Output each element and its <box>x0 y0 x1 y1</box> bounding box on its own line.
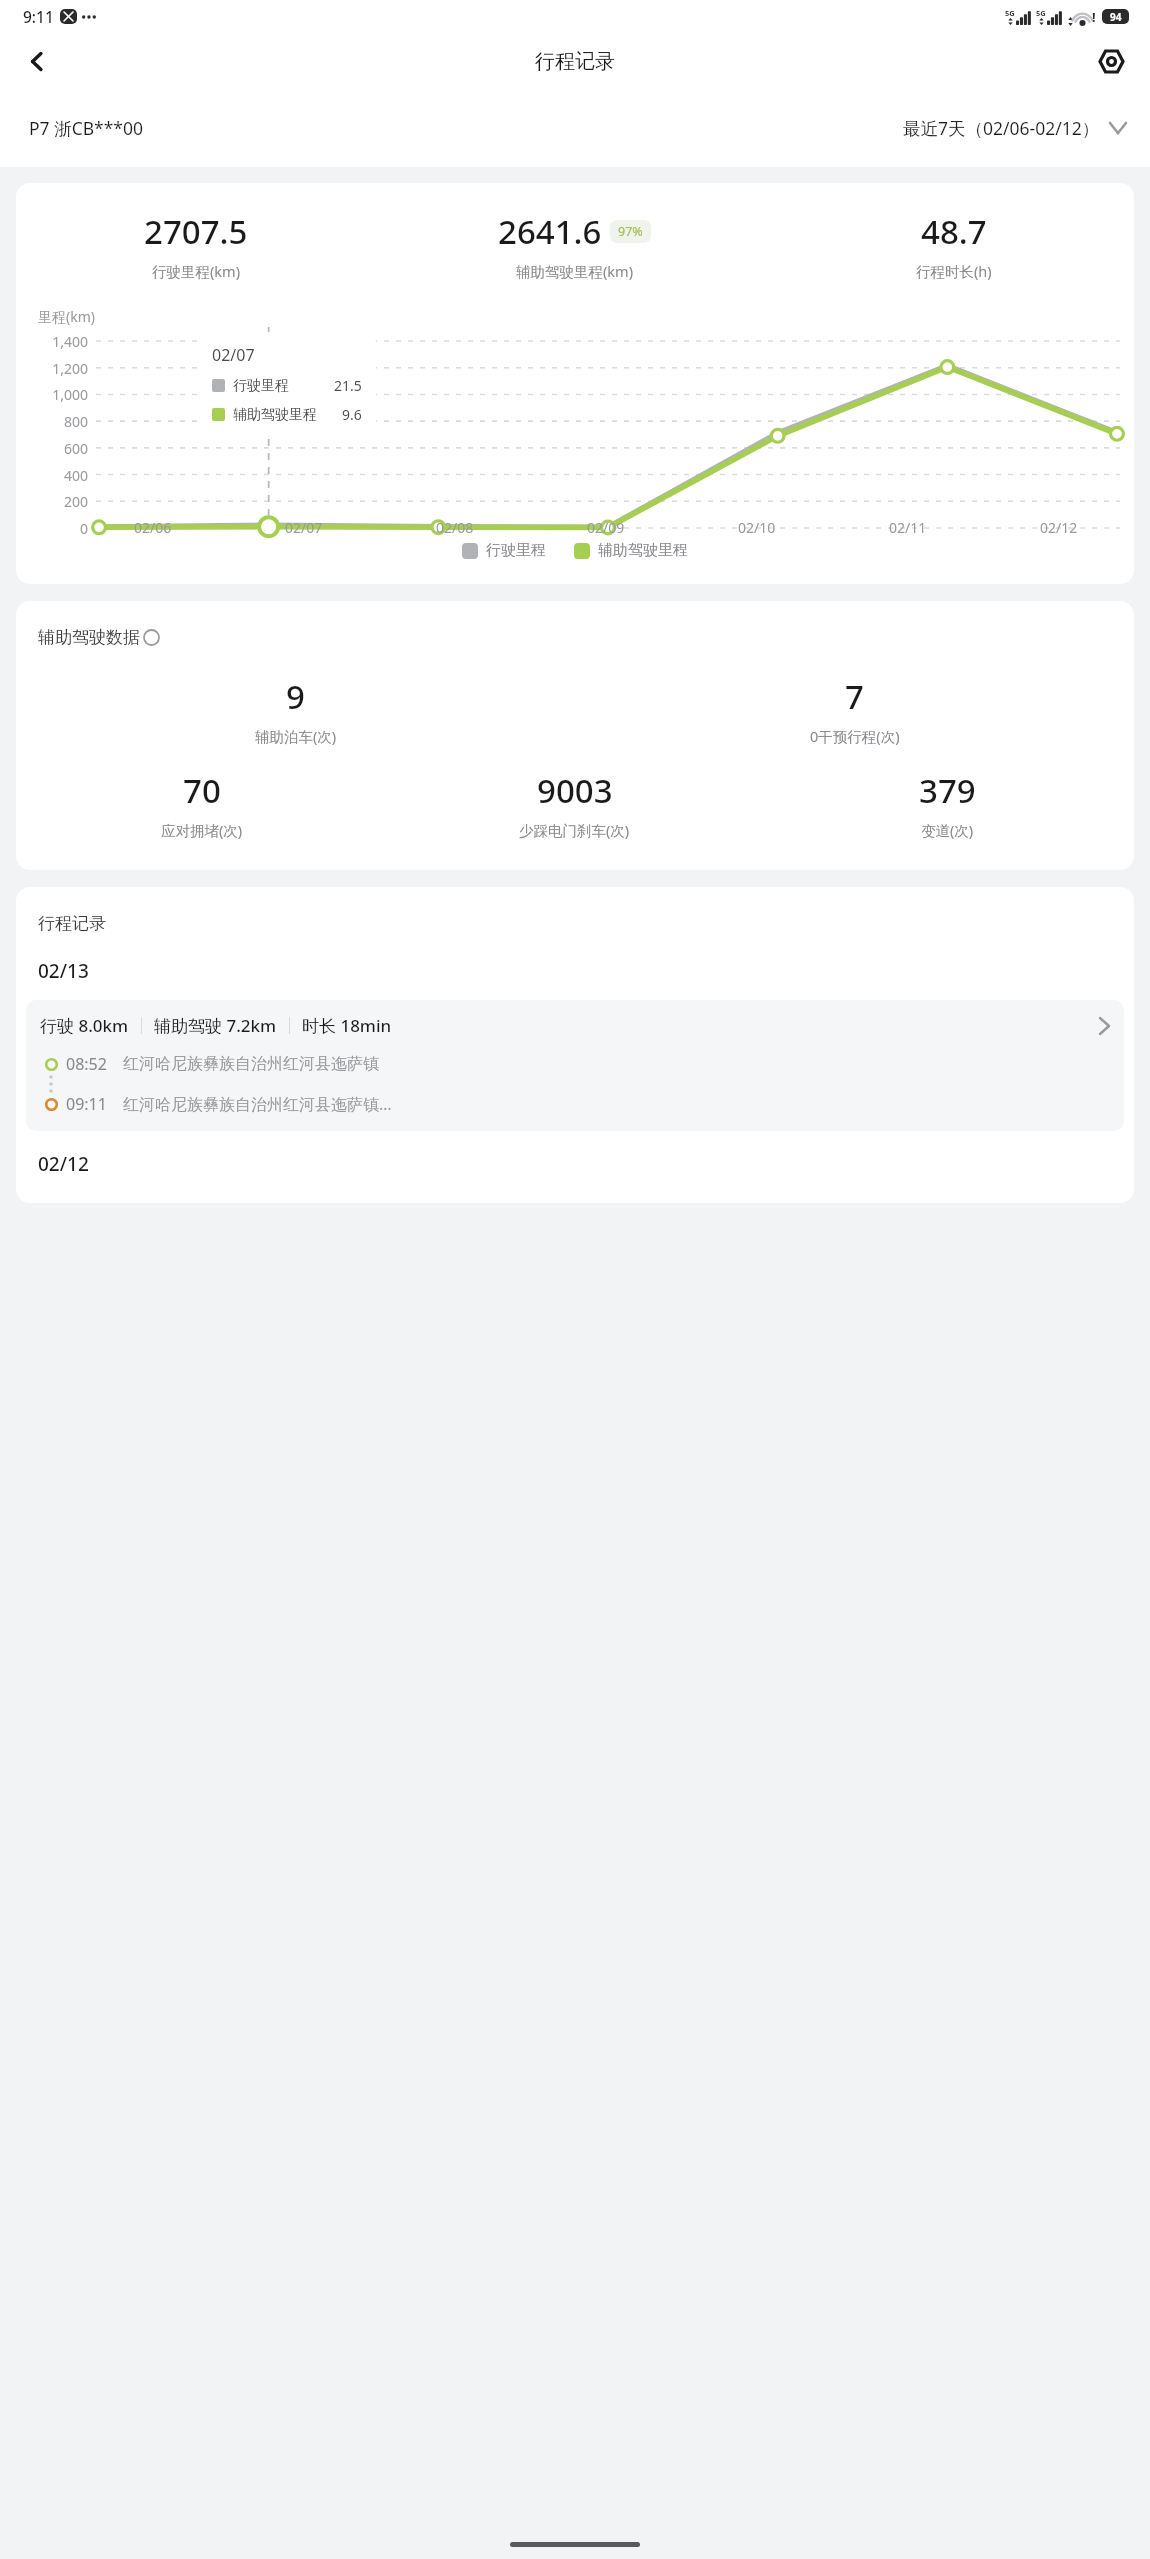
staticText: 行程记录 <box>38 913 106 934</box>
staticText: 2707.5 <box>144 209 248 254</box>
staticText: 02/12 <box>1040 518 1078 537</box>
button[interactable]: P7 浙CB***00 <box>29 116 144 140</box>
staticText: 红河哈尼族彝族自治州红河县迤萨镇… <box>123 1093 392 1115</box>
staticText: 02/12 <box>38 1151 89 1177</box>
staticText: 02/07 <box>285 518 323 537</box>
staticText: 0干预行程(次) <box>810 726 900 746</box>
staticText: 辅助泊车(次) <box>255 726 337 746</box>
staticText: 08:52 <box>66 1053 107 1075</box>
staticText: 9.6 <box>342 405 362 424</box>
staticText: 7 <box>845 674 864 719</box>
staticText: 02/08 <box>436 518 474 537</box>
staticText: 02/11 <box>889 518 927 537</box>
button[interactable]: Settings <box>1088 38 1134 84</box>
staticText: 1,400 <box>52 332 88 350</box>
staticText: 5G <box>1036 8 1046 18</box>
staticText: 02/10 <box>738 518 776 537</box>
staticText: 02/09 <box>587 518 625 537</box>
staticText: 9:11 <box>23 6 54 27</box>
staticText: 9 <box>286 674 305 719</box>
staticText: 行驶里程(km) <box>152 261 241 281</box>
staticText: 辅助驾驶里程(km) <box>516 261 634 281</box>
button[interactable]: Back <box>14 38 60 84</box>
staticText: 200 <box>63 492 88 510</box>
staticText: 行驶 8.0km <box>40 1014 129 1037</box>
staticText: 辅助驾驶 7.2km <box>154 1014 277 1037</box>
staticText: 行驶里程 <box>486 541 546 560</box>
staticText: 48.7 <box>921 209 987 254</box>
staticText: 变道(次) <box>921 820 974 840</box>
staticText: 09:11 <box>66 1093 107 1115</box>
staticText: 行程时长(h) <box>916 261 992 281</box>
staticText: 红河哈尼族彝族自治州红河县迤萨镇 <box>123 1054 379 1074</box>
staticText: 600 <box>63 439 88 457</box>
staticText: 21.5 <box>334 376 362 395</box>
staticText: 里程(km) <box>38 307 95 326</box>
button[interactable]: 行驶 8.0km <box>26 1000 1124 1131</box>
staticText: 02/13 <box>38 958 89 984</box>
staticText: 辅助驾驶里程 <box>233 406 317 424</box>
staticText: 行驶里程 <box>233 377 289 395</box>
staticText: 0 <box>79 519 88 537</box>
staticText: P7 浙CB***00 <box>29 116 144 140</box>
button[interactable]: 最近7天（02/06-02/12） <box>903 116 1126 140</box>
staticText: 辅助驾驶里程 <box>598 541 688 560</box>
staticText: 400 <box>63 466 88 484</box>
staticText: 最近7天（02/06-02/12） <box>903 116 1100 140</box>
staticText: 379 <box>919 768 976 813</box>
staticText: 02/07 <box>212 344 255 366</box>
button[interactable]: 辅助驾驶数据 <box>38 627 160 648</box>
staticText: 97% <box>618 223 643 240</box>
staticText: 2641.6 <box>498 209 602 254</box>
staticText: 800 <box>63 412 88 430</box>
staticText: 时长 18min <box>302 1014 392 1037</box>
staticText: 5G <box>1005 8 1015 18</box>
staticText: 94 <box>1110 10 1122 24</box>
staticText: 应对拥堵(次) <box>161 820 243 840</box>
staticText: 02/06 <box>134 518 172 537</box>
staticText: 70 <box>183 768 221 813</box>
staticText: 行程记录 <box>535 49 615 74</box>
staticText: 1,200 <box>52 359 88 377</box>
staticText: 1,000 <box>52 385 88 403</box>
staticText: 9003 <box>537 768 613 813</box>
staticText: ! <box>1092 8 1096 26</box>
staticText: 辅助驾驶数据 <box>38 627 140 648</box>
staticText: 少踩电门刹车(次) <box>519 820 630 840</box>
